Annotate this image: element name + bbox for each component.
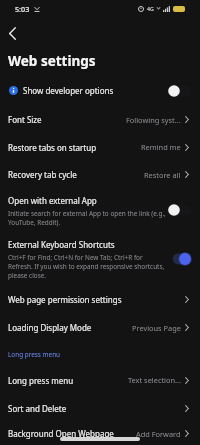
- staticText: Add Forward: [136, 429, 181, 439]
- button[interactable]: Font Size: [0, 105, 200, 134]
- staticText: Remind me: [141, 142, 181, 152]
- staticText: Sort and Delete: [8, 403, 67, 414]
- button[interactable]: Toggle off: [168, 85, 191, 97]
- staticText: Long press menu: [8, 350, 61, 359]
- button[interactable]: Recovery tab cycle: [0, 160, 200, 189]
- staticText: Web page permission settings: [8, 294, 122, 305]
- button[interactable]: Back: [1, 22, 23, 44]
- staticText: 5:03: [15, 4, 30, 14]
- staticText: Following syst...: [126, 115, 181, 125]
- button[interactable]: Web page permission settings: [0, 286, 200, 312]
- button[interactable]: Sort and Delete: [0, 395, 200, 422]
- staticText: Initiate search for external App to open…: [8, 209, 167, 227]
- staticText: Restore tabs on startup: [8, 142, 97, 153]
- staticText: 4G: [147, 5, 154, 12]
- staticText: Open with external App: [8, 195, 97, 206]
- staticText: Background Open Webpage: [8, 428, 114, 439]
- button[interactable]: Restore tabs on startup: [0, 134, 200, 160]
- button[interactable]: Background Open Webpage: [0, 422, 200, 445]
- staticText: Web settings: [8, 52, 96, 70]
- button[interactable]: Toggle on: [168, 253, 191, 265]
- button[interactable]: Open with external App: [0, 189, 200, 230]
- button[interactable]: External Keyboard Shortcuts: [0, 230, 200, 286]
- staticText: Ctrl+F for Find; Ctrl+N for New Tab; Ctr…: [8, 253, 167, 280]
- staticText: Restore all: [144, 170, 181, 180]
- button[interactable]: Toggle off: [168, 204, 191, 216]
- staticText: Show developer options: [23, 85, 114, 96]
- staticText: Recovery tab cycle: [8, 169, 77, 180]
- staticText: External Keyboard Shortcuts: [8, 239, 115, 250]
- staticText: Font Size: [8, 114, 42, 125]
- staticText: Text selection...: [128, 375, 181, 385]
- button[interactable]: Long press menu: [0, 365, 200, 395]
- staticText: Previous Page: [132, 323, 181, 333]
- button[interactable]: Show developer options: [0, 76, 200, 105]
- staticText: Loading Display Mode: [8, 322, 92, 333]
- button[interactable]: Loading Display Mode: [0, 312, 200, 343]
- staticText: Long press menu: [8, 375, 74, 386]
